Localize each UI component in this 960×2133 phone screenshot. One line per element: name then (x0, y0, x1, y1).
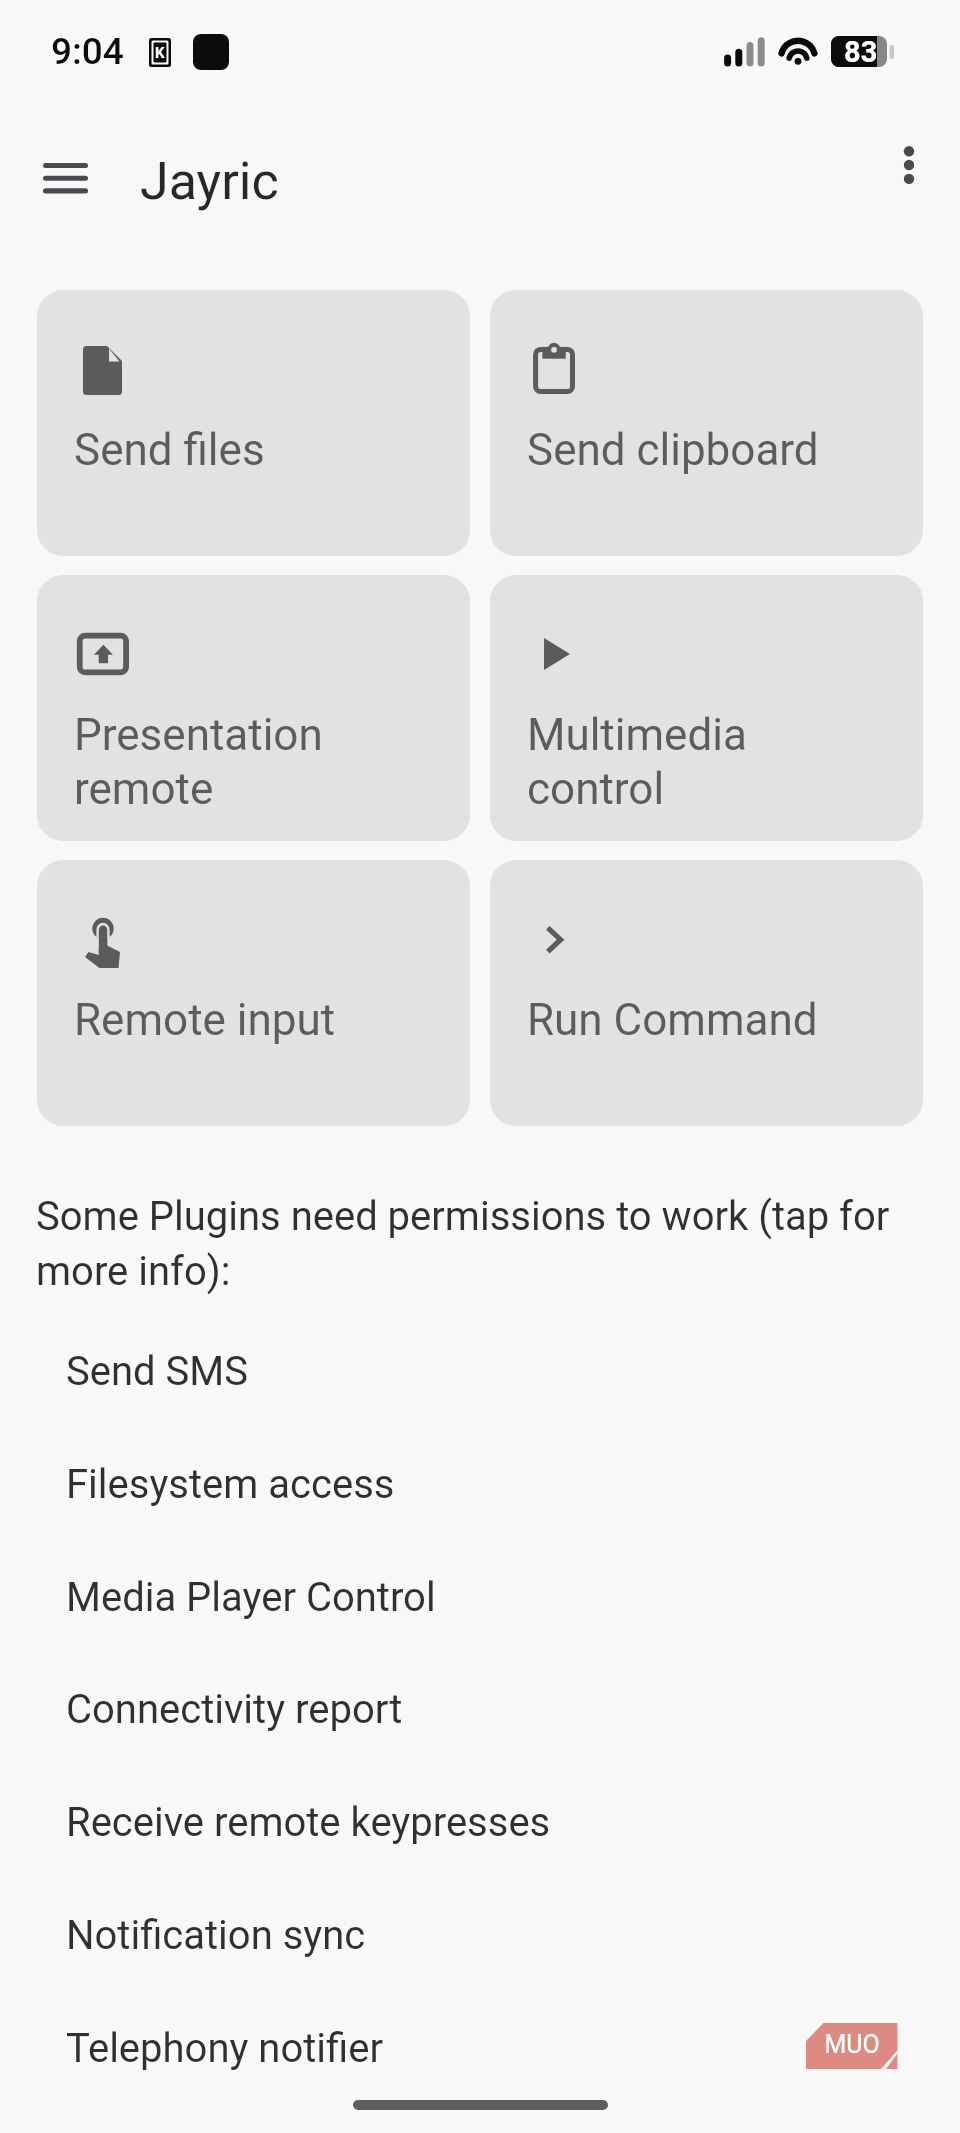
staticText: 9:04 (51, 30, 124, 73)
staticText: K (155, 44, 165, 62)
button[interactable]: Remote input (37, 860, 470, 1126)
button[interactable]: Filesystem access (0, 1428, 960, 1540)
staticText: Send clipboard (527, 422, 819, 476)
staticText: Multimedia control (527, 707, 747, 815)
button[interactable]: Send files (37, 290, 470, 556)
staticText: Connectivity report (66, 1686, 403, 1733)
button[interactable]: Media Player Control (0, 1541, 960, 1653)
button[interactable]: Connectivity report (0, 1653, 960, 1765)
button[interactable]: More options (867, 123, 951, 207)
button[interactable]: Receive remote keypresses (0, 1766, 960, 1878)
button[interactable]: Presentation remote (37, 575, 470, 841)
staticText: Some Plugins need permissions to work (t… (36, 1186, 960, 1296)
button[interactable]: Open navigation menu (23, 136, 107, 220)
staticText: Notification sync (66, 1912, 366, 1959)
staticText: Send SMS (66, 1348, 248, 1395)
staticText: MUO (824, 2030, 880, 2059)
staticText: Receive remote keypresses (66, 1799, 551, 1846)
staticText: Remote input (74, 992, 336, 1046)
button[interactable]: Notification sync (0, 1879, 960, 1991)
button[interactable]: Telephony notifier (0, 1992, 960, 2104)
staticText: 83 (844, 35, 878, 69)
button[interactable]: Run Command (490, 860, 923, 1126)
staticText: Run Command (527, 992, 818, 1046)
staticText: Presentation remote (74, 707, 323, 815)
button[interactable]: Multimedia control (490, 575, 923, 841)
button[interactable]: Send clipboard (490, 290, 923, 556)
staticText: Media Player Control (66, 1574, 436, 1621)
staticText: Filesystem access (66, 1461, 395, 1508)
staticText: Send files (74, 422, 265, 476)
button[interactable]: Some Plugins need permissions to work (t… (0, 1180, 960, 1300)
button[interactable]: Send SMS (0, 1315, 960, 1427)
staticText: Telephony notifier (66, 2025, 383, 2072)
staticText: Jayric (140, 151, 279, 212)
